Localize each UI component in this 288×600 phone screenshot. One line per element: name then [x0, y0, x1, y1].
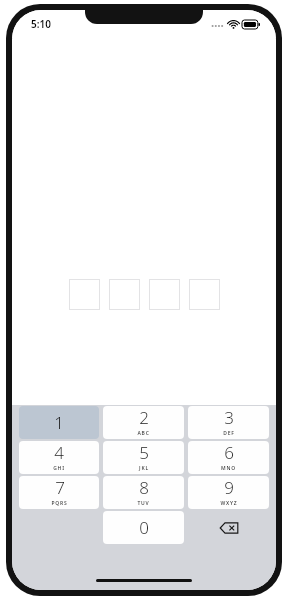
- staticText: DEF: [223, 430, 235, 437]
- staticText: MNO: [221, 465, 236, 472]
- button[interactable]: [189, 279, 220, 310]
- button[interactable]: [109, 279, 140, 310]
- staticText: 6: [224, 441, 234, 464]
- staticText: 8: [139, 476, 149, 499]
- button[interactable]: 8: [103, 476, 184, 509]
- staticText: JKL: [139, 465, 149, 472]
- staticText: 3: [224, 406, 234, 429]
- staticText: 9: [224, 476, 234, 499]
- button[interactable]: 0: [103, 511, 184, 544]
- staticText: GHI: [53, 465, 65, 472]
- staticText: 5: [139, 441, 149, 464]
- button[interactable]: 5: [103, 441, 184, 474]
- staticText: 7: [55, 476, 65, 499]
- button[interactable]: [149, 279, 180, 310]
- staticText: 5:10: [31, 17, 51, 31]
- button[interactable]: 3: [188, 406, 269, 439]
- button[interactable]: 4: [19, 441, 99, 474]
- staticText: WXYZ: [220, 500, 238, 507]
- button[interactable]: [69, 279, 100, 310]
- staticText: 4: [54, 441, 64, 464]
- staticText: 2: [139, 406, 149, 429]
- button[interactable]: Backspace: [188, 511, 269, 544]
- staticText: PQRS: [51, 500, 68, 507]
- button[interactable]: 6: [188, 441, 269, 474]
- staticText: 1: [54, 411, 64, 434]
- staticText: ABC: [137, 430, 150, 437]
- staticText: 0: [139, 516, 149, 539]
- staticText: TUV: [137, 500, 150, 507]
- button[interactable]: 9: [188, 476, 269, 509]
- button[interactable]: 1: [19, 406, 99, 439]
- button[interactable]: 2: [103, 406, 184, 439]
- button[interactable]: 7: [19, 476, 99, 509]
